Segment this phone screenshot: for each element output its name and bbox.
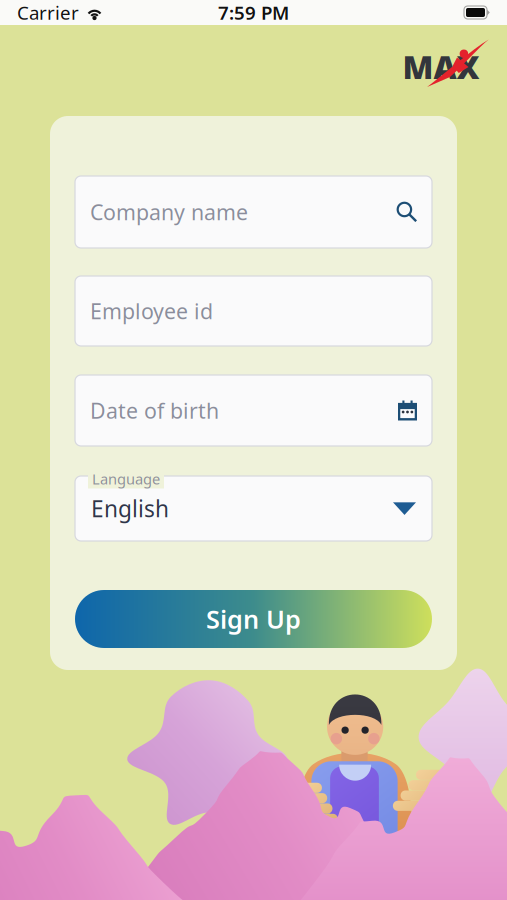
staticText: Employee id [90, 297, 213, 325]
staticText: Sign Up [206, 602, 301, 636]
staticText: Date of birth [90, 396, 219, 425]
staticText: Language [92, 469, 160, 488]
staticText: MAX [402, 45, 479, 88]
button[interactable]: Employee id [75, 276, 432, 346]
staticText: Company name [90, 198, 248, 226]
staticText: English [91, 493, 169, 523]
button[interactable]: Sign Up [75, 590, 432, 648]
staticText: Carrier [17, 0, 79, 25]
button[interactable]: English [75, 476, 432, 541]
staticText: 7:59 PM [218, 0, 289, 25]
button[interactable]: Date of birth [75, 375, 432, 446]
button[interactable]: Company name [75, 176, 432, 248]
